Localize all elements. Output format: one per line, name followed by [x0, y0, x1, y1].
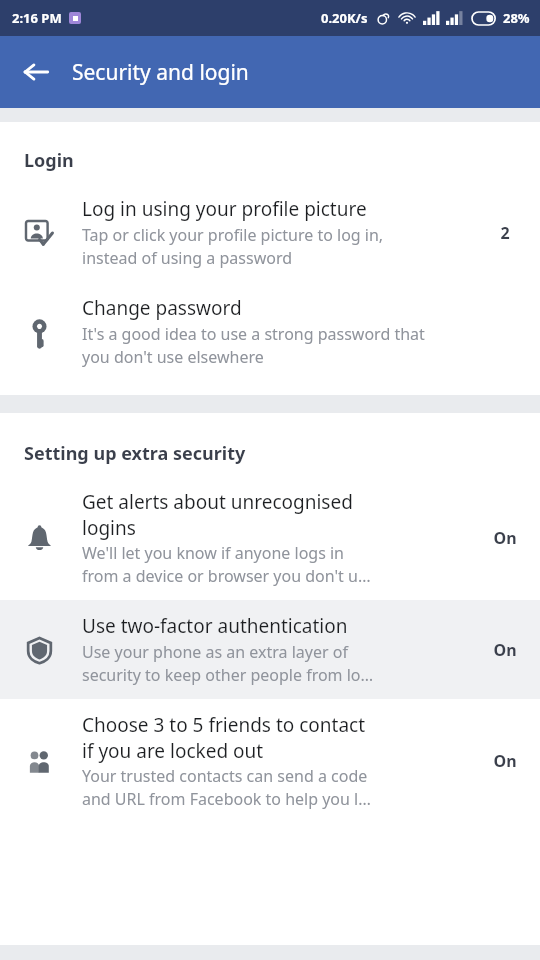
staticText: We'll let you know if anyone logs in fro…	[82, 542, 371, 587]
button[interactable]: Get alerts about unrecognised logins	[0, 476, 540, 600]
staticText: Get alerts about unrecognised logins	[82, 489, 353, 540]
button[interactable]: Use two-factor authentication	[0, 600, 540, 699]
staticText: On	[493, 639, 517, 661]
staticText: It's a good idea to use a strong passwor…	[82, 323, 425, 368]
staticText: Your trusted contacts can send a code an…	[82, 765, 371, 810]
staticText: On	[493, 527, 517, 549]
staticText: Log in using your profile picture	[82, 196, 367, 222]
staticText: Use your phone as an extra layer of secu…	[82, 641, 374, 686]
button[interactable]: Change password	[0, 282, 540, 381]
button[interactable]: Choose 3 to 5 friends to contact if you …	[0, 699, 540, 823]
staticText: Login	[24, 148, 74, 173]
staticText: Change password	[82, 295, 242, 321]
staticText: 2	[500, 222, 510, 244]
staticText: 0.20K/s	[321, 9, 368, 27]
button[interactable]: Back	[12, 48, 60, 96]
staticText: Use two-factor authentication	[82, 613, 348, 639]
staticText: Security and login	[72, 58, 249, 87]
staticText: 28%	[503, 9, 530, 27]
button[interactable]: Log in using your profile picture	[0, 183, 540, 282]
staticText: Setting up extra security	[24, 441, 246, 466]
staticText: On	[493, 750, 517, 772]
staticText: 2:16 PM	[12, 9, 62, 27]
staticText: Choose 3 to 5 friends to contact if you …	[82, 712, 366, 763]
staticText: Tap or click your profile picture to log…	[82, 224, 384, 269]
